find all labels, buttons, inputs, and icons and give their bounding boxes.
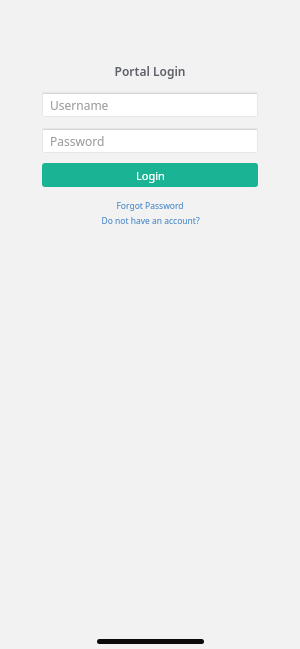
staticText: Do not have an account? (101, 215, 200, 227)
button[interactable]: Username (42, 92, 258, 117)
button[interactable]: Password (42, 128, 258, 153)
staticText: Portal Login (0, 63, 300, 79)
staticText: Forgot Password (116, 200, 184, 212)
staticText: Username (50, 97, 109, 113)
staticText: Login (136, 168, 165, 183)
staticText: Password (50, 133, 105, 149)
button[interactable]: Forgot Password (0, 200, 300, 212)
button[interactable]: Do not have an account? (0, 215, 300, 227)
button[interactable]: Login (42, 163, 258, 187)
other: Home indicator (97, 639, 204, 644)
